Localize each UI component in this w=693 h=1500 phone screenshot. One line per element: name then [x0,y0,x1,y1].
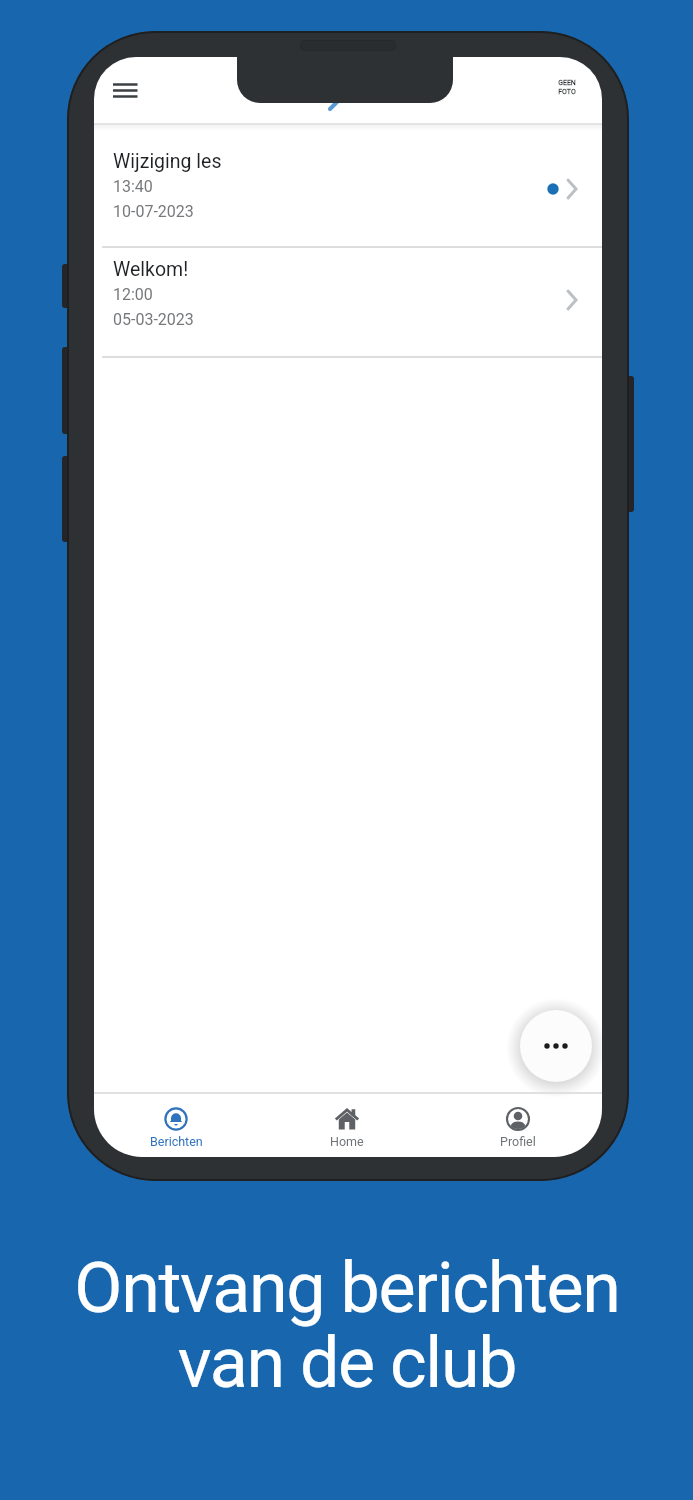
staticText: Wijziging les [113,150,222,173]
staticText: 13:40 [113,177,153,196]
staticText: 10-07-2023 [113,202,194,221]
button[interactable] [106,75,146,105]
button[interactable]: Welkom! [94,255,602,355]
staticText: 05-03-2023 [113,310,194,329]
button[interactable]: GEEN FOTO [544,69,590,105]
staticText: Welkom! [113,258,189,281]
staticText: Profiel [500,1134,536,1149]
button[interactable]: Profiel [478,1093,558,1149]
staticText: 12:00 [113,285,153,304]
staticText: GEEN FOTO [558,79,576,96]
button[interactable]: Berichten [136,1093,216,1149]
staticText: Berichten [150,1134,203,1149]
button[interactable]: Wijziging les [94,149,602,246]
button[interactable] [520,1010,592,1082]
staticText: Ontvang berichten van de club [74,1247,620,1404]
button[interactable]: Home [307,1093,387,1149]
staticText: Home [330,1134,364,1149]
